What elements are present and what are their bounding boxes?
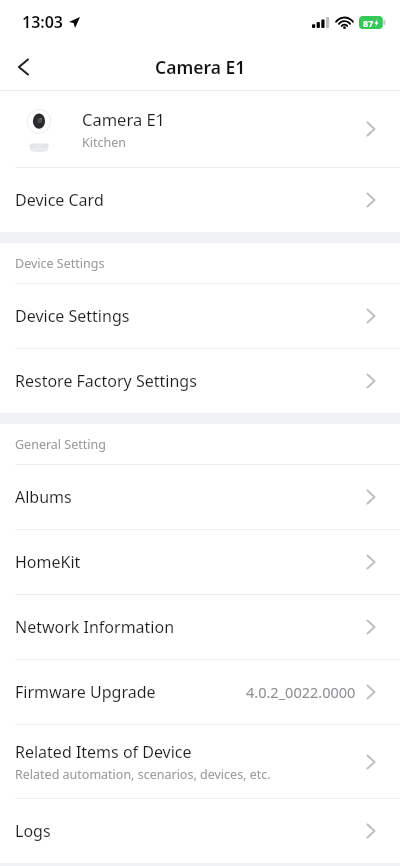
staticText: 13:03 <box>22 11 64 33</box>
button[interactable]: HomeKit <box>0 530 400 594</box>
staticText: Kitchen <box>82 134 126 151</box>
staticText: 4.0.2_0022.0000 <box>246 682 356 702</box>
staticText: Logs <box>15 820 51 842</box>
button[interactable]: Firmware Upgrade <box>0 660 400 724</box>
staticText: Camera E1 <box>155 55 246 79</box>
staticText: General Setting <box>15 436 106 453</box>
button[interactable]: Restore Factory Settings <box>0 349 400 413</box>
button[interactable]: Logs <box>0 799 400 863</box>
button[interactable]: Network Information <box>0 595 400 659</box>
staticText: Restore Factory Settings <box>15 370 197 392</box>
button[interactable]: Device Settings <box>0 284 400 348</box>
staticText: Albums <box>15 486 72 508</box>
staticText: Related Items of Device <box>15 741 192 763</box>
staticText: Firmware Upgrade <box>15 681 156 703</box>
staticText: Related automation, scenarios, devices, … <box>15 766 271 783</box>
staticText: 87 <box>363 17 374 29</box>
button[interactable]: Albums <box>0 465 400 529</box>
staticText: HomeKit <box>15 551 81 573</box>
staticText: Device Card <box>15 189 104 211</box>
button[interactable]: Device Card <box>0 168 400 232</box>
button[interactable]: Camera E1 <box>0 91 400 167</box>
staticText: Device Settings <box>15 305 130 327</box>
button[interactable]: Related Items of Device <box>0 725 400 798</box>
staticText: Camera E1 <box>82 108 166 130</box>
button[interactable]: Back <box>0 44 46 90</box>
staticText: Network Information <box>15 616 175 638</box>
staticText: Device Settings <box>15 255 105 272</box>
